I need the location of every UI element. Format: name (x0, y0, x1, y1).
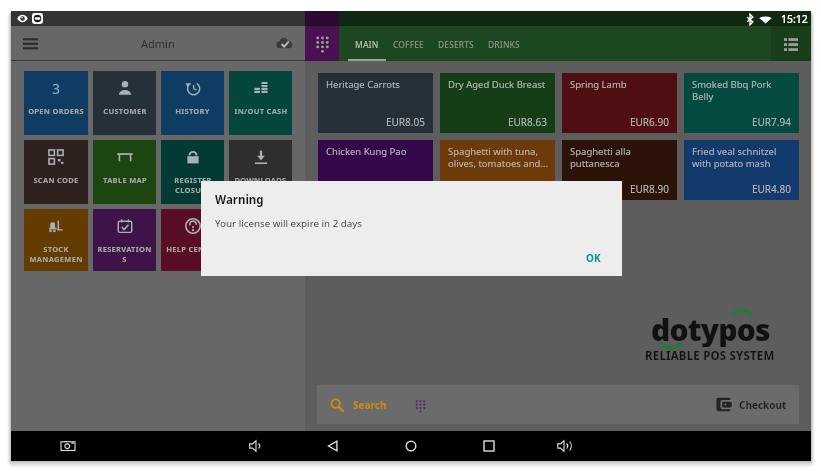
button[interactable]: IN/OUT CASH (229, 71, 292, 135)
button[interactable]: REGISTER (161, 140, 224, 204)
button[interactable]: Volume down (245, 435, 267, 457)
button[interactable]: SCAN CODE (24, 140, 88, 204)
button[interactable]: DOWNLOADS (229, 140, 292, 204)
button[interactable]: COFFEE (386, 26, 431, 61)
staticText: RESERVATION (97, 244, 152, 254)
staticText: Spaghetti alla puttanesca (570, 145, 672, 170)
staticText: Chicken Kung Pao (326, 145, 407, 158)
button[interactable]: Fried veal schnitzel with potato mash (684, 140, 799, 200)
staticText: IN/OUT CASH (234, 106, 288, 116)
button[interactable]: MAIN (348, 26, 386, 61)
staticText: CUSTOMER (103, 106, 147, 116)
staticText: STOCK (43, 244, 69, 254)
button[interactable]: RESERVATION (93, 209, 156, 271)
button[interactable]: Recents (478, 435, 500, 457)
staticText: HISTORY (175, 106, 210, 116)
button[interactable]: Search (330, 385, 387, 424)
staticText: Smoked Bbq Pork Belly (692, 78, 794, 103)
staticText: EUR8.05 (386, 115, 425, 129)
button[interactable]: OK (574, 246, 613, 270)
staticText: DOWNLOADS (234, 175, 287, 185)
staticText: REGISTER (174, 175, 212, 185)
staticText: Admin (141, 36, 175, 51)
staticText: dotypos (651, 309, 770, 347)
staticText: Search (353, 398, 387, 412)
staticText: DRINKS (488, 39, 520, 51)
staticText: MANAGEMEN (29, 254, 83, 264)
button[interactable]: HISTORY (161, 71, 224, 135)
staticText: Heritage Carrots (326, 78, 400, 91)
staticText: COFFEE (393, 39, 424, 51)
button[interactable]: Spaghetti alla puttanesca (562, 140, 677, 200)
button[interactable]: Keypad (305, 26, 339, 61)
button[interactable]: List view (771, 26, 811, 61)
staticText: EUR8.90 (630, 182, 669, 196)
button[interactable]: Smoked Bbq Pork Belly (684, 73, 799, 133)
button[interactable]: STOCK (24, 209, 88, 271)
staticText: Your license will expire in 2 days (215, 217, 363, 230)
staticText: Dry Aged Duck Breast (448, 78, 546, 91)
button[interactable]: Dry Aged Duck Breast (440, 73, 555, 133)
staticText: Warning (215, 192, 264, 208)
button[interactable]: Cloud sync (271, 30, 297, 56)
staticText: Checkout (739, 398, 787, 412)
staticText: SCAN CODE (33, 175, 79, 185)
button[interactable]: DESERTS (431, 26, 481, 61)
button[interactable]: Back (322, 435, 344, 457)
button[interactable]: TABLE MAP (93, 140, 156, 204)
button[interactable]: Menu (17, 30, 43, 56)
staticText: 15:12 (781, 12, 808, 26)
button[interactable]: Heritage Carrots (318, 73, 433, 133)
staticText: Spring Lamb (570, 78, 627, 91)
button[interactable]: Chicken Kung Pao (318, 140, 433, 200)
staticText: EUR4.80 (752, 182, 791, 196)
staticText: Spaghetti with tuna, olives, tomatoes an… (448, 145, 550, 170)
staticText: EUR8.63 (508, 115, 547, 129)
button[interactable]: Spaghetti with tuna, olives, tomatoes an… (440, 140, 555, 200)
button[interactable]: Home (400, 435, 422, 457)
button[interactable]: CUSTOMER (93, 71, 156, 135)
staticText: EUR7.94 (752, 115, 791, 129)
button[interactable]: 3 (24, 71, 88, 135)
staticText: OPEN ORDERS (28, 106, 84, 116)
staticText: EUR6.90 (630, 115, 669, 129)
button[interactable]: DRINKS (481, 26, 527, 61)
staticText: Fried veal schnitzel with potato mash (692, 145, 794, 170)
staticText: TABLE MAP (103, 175, 147, 185)
staticText: S (122, 254, 127, 264)
button[interactable]: Volume up (553, 435, 575, 457)
staticText: HELP CENTER (166, 244, 219, 254)
button[interactable]: HELP CENTER (161, 209, 224, 271)
staticText: 3 (52, 79, 61, 97)
button[interactable]: Screenshot (57, 435, 79, 457)
button[interactable]: Spring Lamb (562, 73, 677, 133)
staticText: CLOSURE (175, 185, 211, 195)
staticText: MAIN (355, 39, 379, 51)
button[interactable]: Keypad (410, 395, 430, 415)
button[interactable]: Checkout (716, 385, 787, 424)
staticText: RELIABLE POS SYSTEM (645, 348, 775, 364)
staticText: DESERTS (438, 39, 474, 51)
staticText: OK (586, 251, 601, 265)
